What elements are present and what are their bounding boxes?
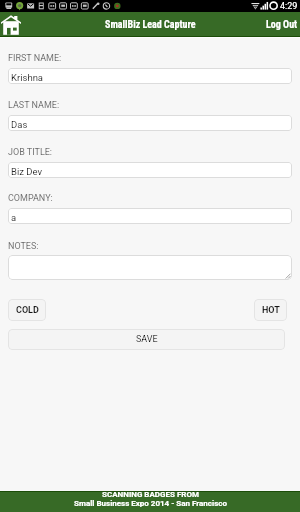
staticText: SCANNING BADGES FROM: [102, 490, 199, 499]
staticText: a: [11, 212, 17, 223]
button[interactable]: Notes: [8, 255, 292, 280]
staticText: HOT: [262, 305, 280, 316]
staticText: Log Out: [266, 19, 298, 31]
staticText: SmallBiz Lead Capture: [105, 19, 196, 31]
staticText: Small Business Expo 2014 - San Francisco: [74, 499, 227, 508]
staticText: NOTES:: [8, 241, 39, 252]
button[interactable]: Biz Dev: [8, 162, 292, 178]
button[interactable]: Log Out: [262, 19, 300, 31]
staticText: COMPANY:: [8, 193, 53, 204]
staticText: Das: [11, 119, 28, 130]
staticText: COLD: [16, 305, 39, 316]
button[interactable]: Krishna: [8, 68, 292, 84]
button[interactable]: HOT: [254, 299, 287, 321]
button[interactable]: a: [8, 208, 292, 224]
button[interactable]: COLD: [8, 299, 46, 321]
button[interactable]: Home: [1, 15, 21, 35]
staticText: Krishna: [11, 72, 44, 83]
staticText: JOB TITLE:: [8, 147, 53, 158]
button[interactable]: SAVE: [8, 329, 285, 350]
button[interactable]: Das: [8, 115, 292, 131]
staticText: LAST NAME:: [8, 100, 60, 111]
staticText: FIRST NAME:: [8, 53, 62, 64]
staticText: Biz Dev: [11, 166, 43, 177]
staticText: 4:29: [280, 1, 298, 12]
staticText: SAVE: [136, 334, 158, 345]
